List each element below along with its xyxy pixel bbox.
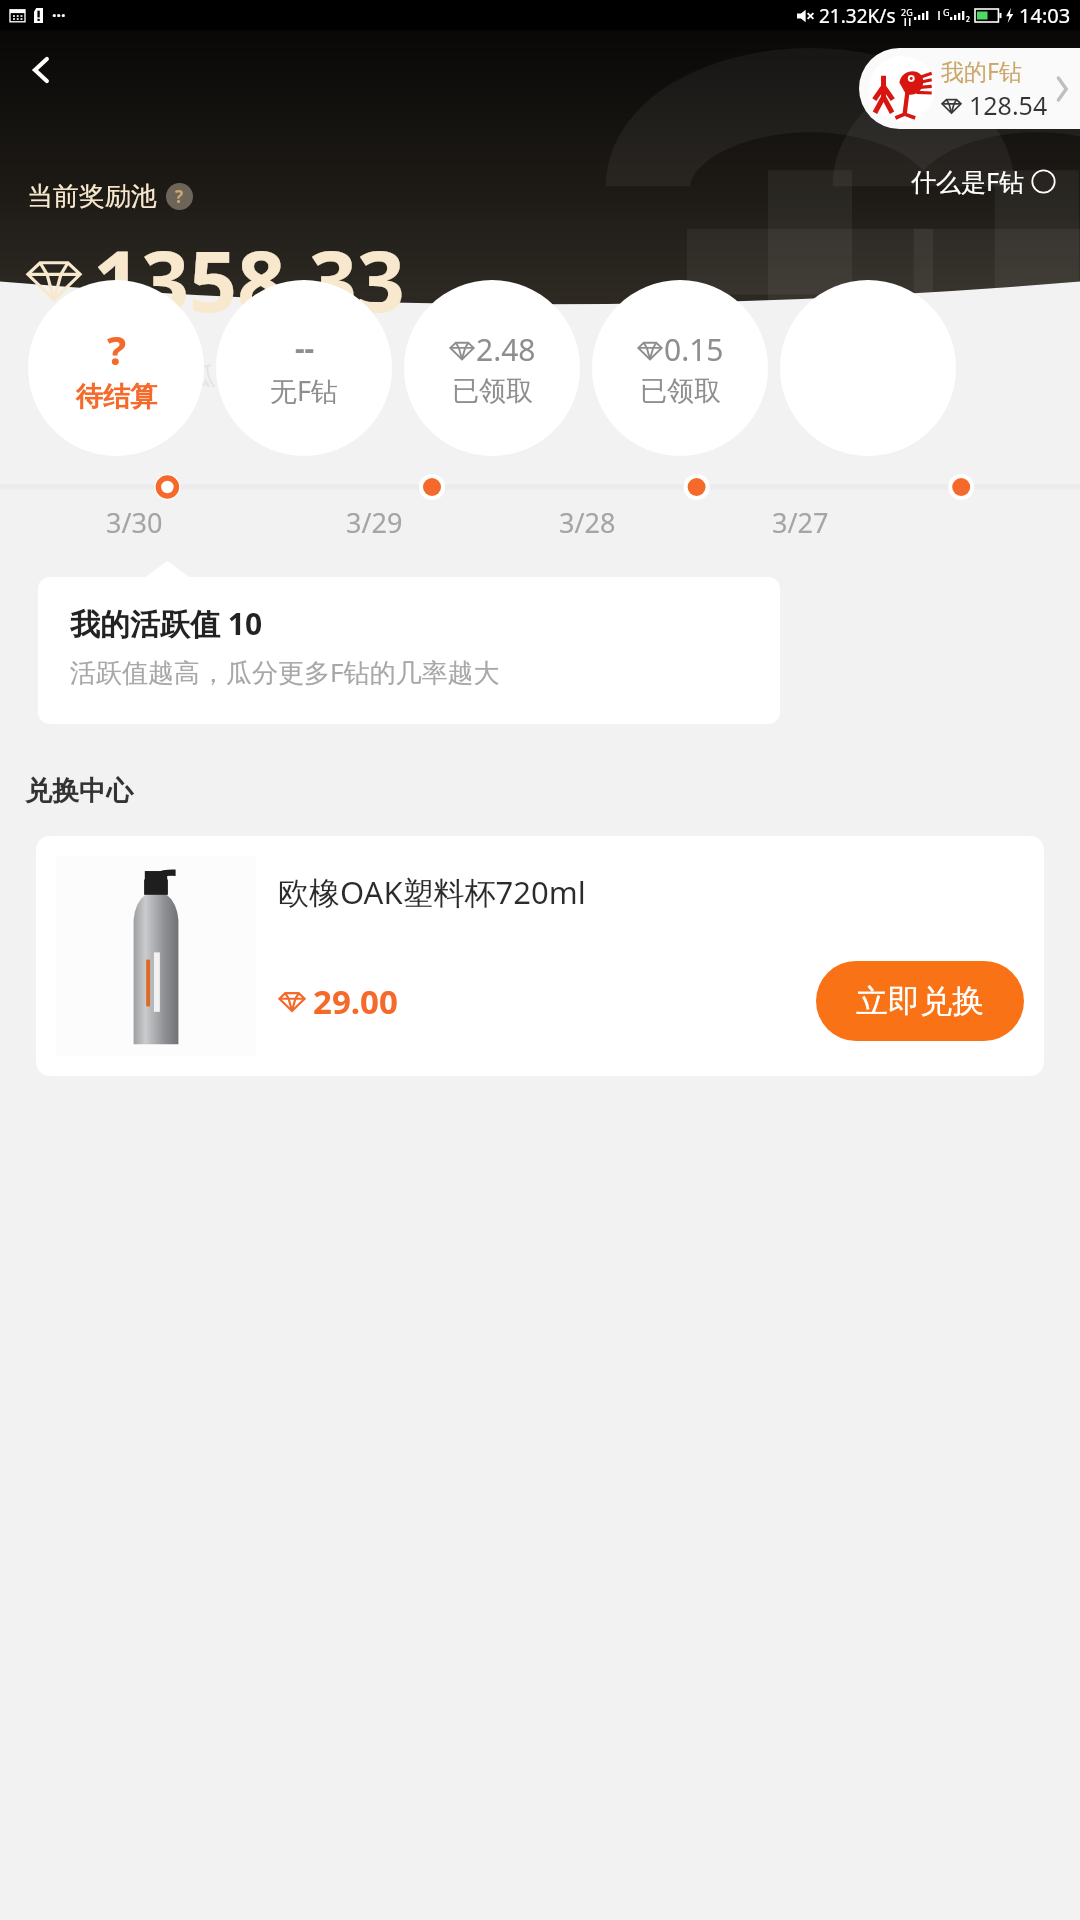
button[interactable]: 2.48	[404, 280, 580, 456]
button[interactable]: 立即兑换	[816, 961, 1024, 1041]
staticText: 128.54	[969, 88, 1048, 122]
staticText: 我的F钻	[941, 55, 1022, 86]
button[interactable]: 我的F钻	[859, 48, 1080, 129]
staticText: 无F钻	[270, 372, 339, 409]
button[interactable]: ?	[28, 280, 204, 456]
staticText: 3/29	[346, 504, 403, 541]
staticText: 2.48	[476, 329, 536, 370]
button[interactable]	[780, 280, 956, 456]
staticText: 已领取	[640, 374, 721, 408]
staticText: 3/30	[106, 504, 163, 541]
staticText: 已领取	[452, 374, 533, 408]
staticText: 我的活跃值 10	[70, 603, 263, 644]
staticText: 什么是F钻	[911, 164, 1024, 198]
button[interactable]: ?	[166, 183, 193, 210]
staticText: 14:03	[1019, 2, 1071, 29]
staticText: 3/28	[559, 504, 616, 541]
staticText: 立即兑换	[856, 981, 984, 1021]
staticText: 待结算	[76, 380, 157, 414]
button[interactable]: 欧橡OAK塑料杯720ml	[36, 836, 1044, 1076]
staticText: G	[943, 6, 950, 18]
staticText: 活跃值越高，瓜分更多F钻的几率越大	[70, 654, 500, 690]
staticText: 21.32K/s	[819, 3, 896, 29]
staticText: ?	[175, 185, 184, 208]
button[interactable]: 0.15	[592, 280, 768, 456]
staticText: 当前奖励池	[27, 180, 157, 213]
staticText: ···	[52, 4, 66, 26]
staticText: 0.15	[664, 329, 724, 370]
staticText: 1358.33	[93, 222, 405, 336]
button[interactable]: 什么是F钻	[905, 158, 1062, 204]
button[interactable]: Back	[14, 42, 70, 98]
button[interactable]: 我的活跃值 10	[38, 577, 780, 724]
staticText: 每天22:05开始瓜分 (GMT+8)	[27, 358, 346, 392]
button[interactable]: --	[216, 280, 392, 456]
staticText: ₂	[966, 8, 970, 23]
staticText: 3/27	[772, 504, 829, 541]
staticText: --	[295, 327, 315, 368]
staticText: 2G	[901, 6, 913, 18]
staticText: 29.00	[313, 979, 398, 1024]
staticText: ?	[107, 322, 127, 376]
staticText: 欧橡OAK塑料杯720ml	[278, 871, 586, 913]
staticText: 兑换中心	[25, 774, 133, 808]
